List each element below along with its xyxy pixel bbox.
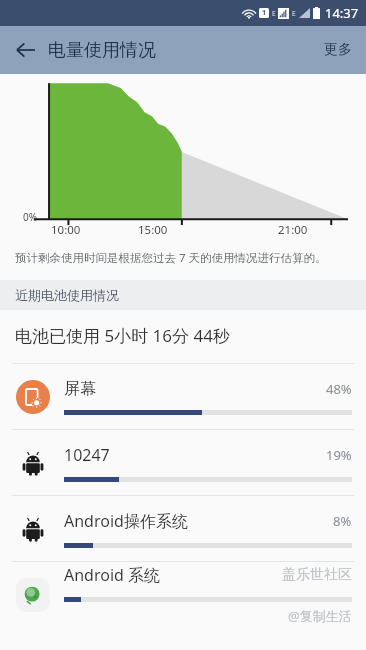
staticText: E: [292, 9, 296, 18]
staticText: 1: [262, 8, 267, 18]
button[interactable]: Android操作系统: [0, 496, 366, 561]
staticText: 更多: [324, 41, 352, 59]
staticText: E: [272, 9, 276, 18]
staticText: 21:00: [278, 222, 308, 238]
staticText: 盖乐世社区: [282, 566, 352, 584]
staticText: Android 系统: [64, 564, 282, 586]
staticText: @复制生活: [288, 607, 352, 625]
staticText: 近期电池使用情况: [15, 287, 119, 303]
staticText: 15:00: [138, 222, 168, 238]
button[interactable]: Back: [6, 30, 46, 70]
staticText: 8%: [333, 512, 352, 530]
staticText: 48%: [326, 380, 352, 398]
staticText: 19%: [326, 446, 352, 464]
staticText: 屏幕: [64, 379, 326, 399]
staticText: 0%: [23, 210, 38, 224]
staticText: 10:00: [51, 222, 81, 238]
staticText: 10247: [64, 444, 326, 466]
staticText: 14:37: [325, 4, 359, 22]
staticText: 预计剩余使用时间是根据您过去 7 天的使用情况进行估算的。: [15, 250, 327, 266]
button[interactable]: Android 系统: [0, 562, 366, 627]
button[interactable]: 屏幕: [0, 364, 366, 429]
button[interactable]: 更多: [310, 29, 366, 71]
button[interactable]: 10247: [0, 430, 366, 495]
staticText: 电池已使用 5小时 16分 44秒: [15, 324, 230, 347]
staticText: 电量使用情况: [48, 39, 156, 62]
staticText: Android操作系统: [64, 510, 333, 532]
